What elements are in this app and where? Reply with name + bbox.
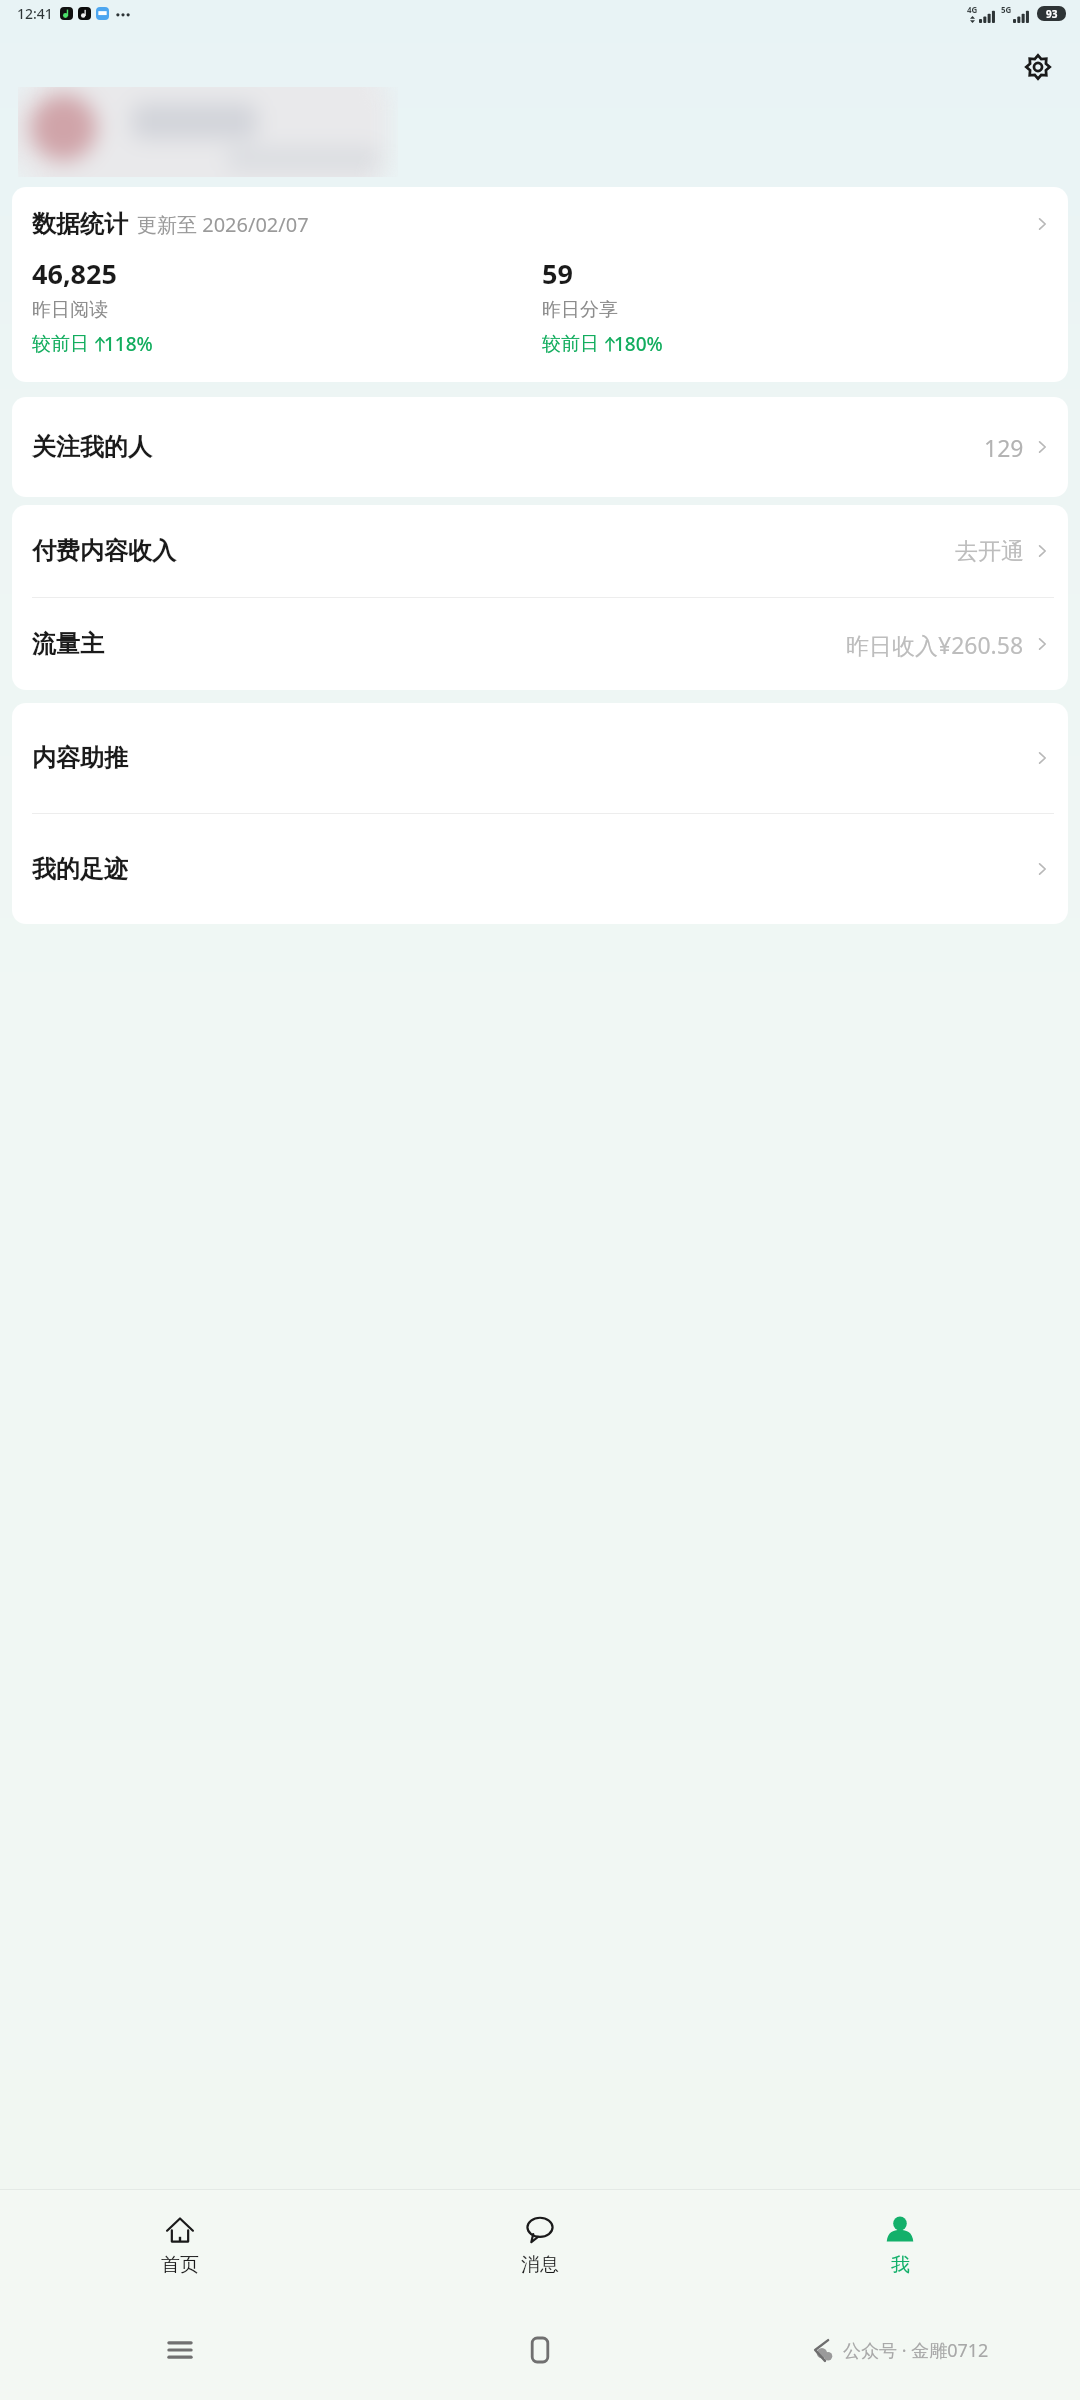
staticText: 付费内容收入 <box>32 536 176 566</box>
staticText: 昨日收入¥260.58 <box>846 629 1024 660</box>
button[interactable]: Settings <box>1016 45 1060 89</box>
staticText: 46,825 <box>32 255 117 292</box>
button[interactable]: 内容助推 <box>12 703 1068 813</box>
staticText: 数据统计 <box>32 209 128 239</box>
staticText: 4G <box>967 4 978 15</box>
button[interactable]: 流量主 <box>12 598 1068 690</box>
staticText: 我 <box>891 2253 910 2277</box>
staticText: 129 <box>984 432 1024 463</box>
staticText: 5G <box>1001 4 1012 15</box>
button[interactable]: Home <box>525 2335 555 2365</box>
button[interactable]: 消息 <box>360 2190 720 2300</box>
staticText: 公众号 · 金雕0712 <box>843 2338 989 2363</box>
staticText: 内容助推 <box>32 743 128 773</box>
button[interactable]: Recents <box>165 2335 195 2365</box>
staticText: 关注我的人 <box>32 432 152 462</box>
staticText: 较前日 <box>32 332 89 356</box>
staticText: 59 <box>542 255 573 292</box>
staticText: 180% <box>614 331 663 357</box>
staticText: 12:41 <box>17 4 53 23</box>
staticText: 昨日分享 <box>542 298 618 322</box>
button[interactable]: 数据统计 <box>12 187 1068 382</box>
staticText: 我的足迹 <box>32 854 128 884</box>
staticText: 首页 <box>161 2253 199 2277</box>
staticText: 昨日阅读 <box>32 298 108 322</box>
staticText: 消息 <box>521 2253 559 2277</box>
button[interactable]: 关注我的人 <box>12 397 1068 497</box>
button[interactable]: 我的足迹 <box>12 814 1068 924</box>
staticText: 较前日 <box>542 332 599 356</box>
staticText: 更新至 2026/02/07 <box>137 211 309 238</box>
staticText: 去开通 <box>955 537 1024 566</box>
button[interactable]: 首页 <box>0 2190 360 2300</box>
staticText: 流量主 <box>32 629 104 659</box>
button[interactable]: 我 <box>720 2190 1080 2300</box>
button[interactable]: 付费内容收入 <box>12 505 1068 597</box>
staticText: 93 <box>1046 7 1058 21</box>
staticText: 118% <box>104 331 153 357</box>
